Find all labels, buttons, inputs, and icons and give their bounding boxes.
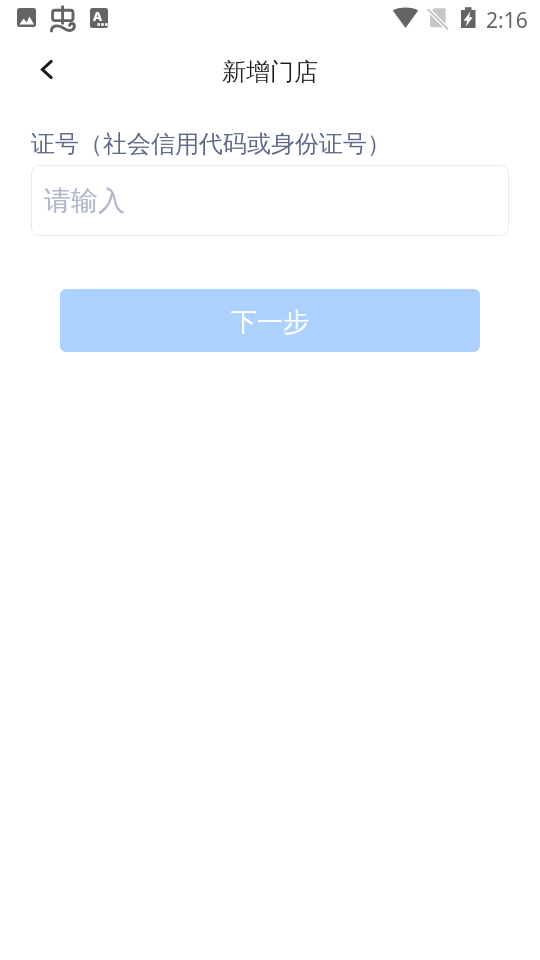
staticText: 新增门店 [0,57,540,87]
staticText: A [93,7,102,25]
staticText: 下一步 [231,306,309,339]
staticText: 证号（社会信用代码或身份证号） [31,129,391,159]
button[interactable]: 请输入 [31,165,509,236]
staticText: 2:16 [486,6,528,35]
staticText: 请输入 [44,184,125,218]
button[interactable]: Back [16,52,60,96]
button[interactable]: 下一步 [60,289,480,352]
